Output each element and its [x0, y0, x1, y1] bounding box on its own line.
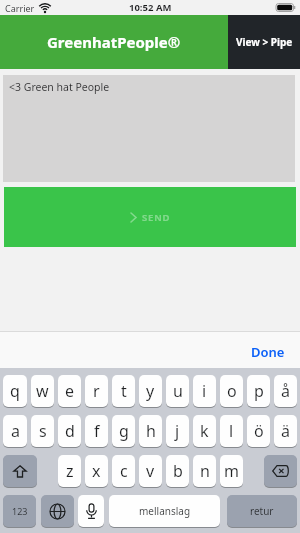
button[interactable]: ä — [274, 415, 297, 448]
button[interactable]: View > Pipe — [228, 15, 300, 69]
staticText: retur — [250, 504, 274, 518]
button[interactable]: Done — [251, 343, 285, 361]
staticText: Carrier — [5, 2, 35, 14]
button[interactable]: c — [112, 455, 135, 488]
button[interactable] — [264, 455, 297, 488]
staticText: d — [65, 420, 75, 442]
staticText: n — [200, 460, 210, 482]
staticText: 123 — [12, 505, 28, 517]
staticText: w — [36, 380, 49, 402]
button[interactable]: SEND — [4, 187, 296, 247]
button[interactable]: ö — [247, 415, 270, 448]
button[interactable]: 123 — [3, 495, 36, 528]
staticText: b — [173, 460, 183, 482]
button[interactable]: b — [166, 455, 189, 488]
button[interactable] — [3, 455, 37, 488]
button[interactable]: i — [193, 375, 216, 408]
button[interactable] — [41, 495, 74, 528]
button[interactable]: o — [220, 375, 243, 408]
button[interactable]: å — [274, 375, 297, 408]
button[interactable]: v — [139, 455, 162, 488]
button[interactable]: n — [193, 455, 216, 488]
button[interactable]: mellanslag — [109, 495, 220, 528]
staticText: mellanslag — [139, 504, 191, 518]
button[interactable]: z — [58, 455, 81, 488]
staticText: ö — [254, 420, 264, 442]
button[interactable] — [78, 495, 104, 528]
staticText: f — [94, 420, 100, 442]
staticText: p — [254, 380, 264, 402]
staticText: 10:52 AM — [129, 1, 172, 14]
staticText: h — [146, 420, 156, 442]
button[interactable]: k — [193, 415, 216, 448]
button[interactable]: j — [166, 415, 189, 448]
staticText: e — [65, 380, 75, 402]
button[interactable]: a — [3, 415, 27, 448]
button[interactable]: retur — [227, 495, 297, 528]
button[interactable]: p — [247, 375, 270, 408]
button[interactable]: d — [58, 415, 81, 448]
staticText: o — [227, 380, 237, 402]
staticText: Done — [251, 343, 285, 361]
staticText: l — [229, 420, 234, 442]
staticText: View > Pipe — [236, 35, 293, 49]
button[interactable]: f — [85, 415, 108, 448]
staticText: q — [10, 380, 20, 402]
button[interactable]: w — [31, 375, 54, 408]
staticText: c — [120, 460, 128, 482]
button[interactable]: m — [220, 455, 243, 488]
staticText: i — [202, 380, 207, 402]
staticText: x — [92, 460, 101, 482]
button[interactable]: GreenhatPeople® — [0, 15, 228, 69]
staticText: v — [146, 460, 155, 482]
button[interactable]: r — [85, 375, 108, 408]
staticText: u — [173, 380, 183, 402]
staticText: k — [200, 420, 209, 442]
staticText: GreenhatPeople® — [47, 32, 181, 52]
button[interactable]: l — [220, 415, 243, 448]
staticText: a — [11, 420, 20, 442]
staticText: j — [175, 420, 180, 442]
button[interactable]: u — [166, 375, 189, 408]
staticText: y — [146, 380, 155, 402]
staticText: z — [66, 460, 74, 482]
button[interactable]: s — [31, 415, 54, 448]
button[interactable]: g — [112, 415, 135, 448]
staticText: t — [121, 380, 127, 402]
button[interactable]: x — [85, 455, 108, 488]
staticText: r — [93, 380, 100, 402]
button[interactable]: y — [139, 375, 162, 408]
staticText: å — [281, 380, 290, 402]
staticText: g — [119, 420, 129, 442]
button[interactable]: <3 Green hat People — [3, 75, 295, 182]
button[interactable]: h — [139, 415, 162, 448]
button[interactable]: e — [58, 375, 81, 408]
staticText: s — [39, 420, 47, 442]
staticText: ä — [281, 420, 290, 442]
button[interactable]: t — [112, 375, 135, 408]
staticText: m — [224, 460, 239, 482]
staticText: <3 Green hat People — [9, 80, 110, 94]
button[interactable]: q — [3, 375, 27, 408]
staticText: SEND — [142, 211, 171, 224]
